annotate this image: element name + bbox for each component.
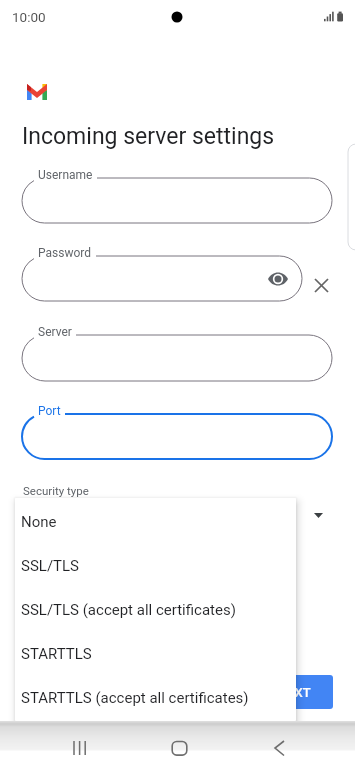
button[interactable]: Password — [22, 256, 302, 301]
staticText: Server — [38, 325, 72, 339]
button[interactable]: Security type — [22, 500, 332, 534]
button[interactable]: Username — [22, 178, 332, 223]
staticText: SSL/TLS — [21, 557, 80, 575]
staticText: 10:00 — [12, 9, 46, 25]
staticText: Password — [38, 246, 92, 260]
button[interactable]: Show password — [262, 264, 294, 293]
button[interactable]: SSL/TLS — [15, 544, 296, 588]
staticText: NEXT — [278, 685, 311, 700]
button[interactable]: Recent apps — [56, 728, 104, 764]
button[interactable]: STARTTLS — [15, 632, 296, 676]
staticText: Incoming server settings — [22, 123, 275, 150]
staticText: STARTTLS — [21, 645, 92, 663]
button[interactable]: NEXT — [255, 675, 333, 709]
button[interactable]: Back — [255, 728, 303, 764]
staticText: SSL/TLS (accept all certificates) — [21, 601, 236, 619]
button[interactable]: Port — [22, 414, 332, 459]
staticText: Security type — [23, 484, 89, 497]
staticText: Username — [38, 168, 93, 182]
button[interactable]: Server — [22, 335, 332, 381]
staticText: STARTTLS (accept all certificates) — [21, 689, 249, 707]
staticText: Port — [38, 404, 61, 418]
button[interactable]: STARTTLS (accept all certificates) — [15, 676, 296, 720]
button[interactable]: SSL/TLS (accept all certificates) — [15, 588, 296, 632]
staticText: None — [21, 513, 57, 531]
button[interactable]: None — [15, 500, 296, 544]
button[interactable]: Home — [155, 728, 203, 764]
button[interactable]: Clear — [307, 271, 336, 300]
